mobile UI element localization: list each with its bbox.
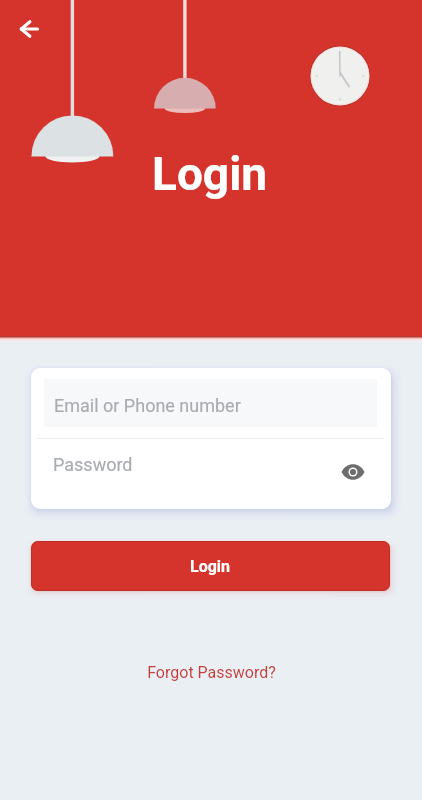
staticText: Login	[190, 557, 231, 576]
button[interactable]: Password	[31, 437, 391, 492]
staticText: Login	[152, 147, 268, 201]
button[interactable]: Email or Phone number	[44, 379, 377, 427]
staticText: Forgot Password?	[147, 663, 276, 682]
button[interactable]: Forgot Password?	[131, 655, 292, 690]
button[interactable]: Login	[31, 541, 390, 591]
staticText: Email or Phone number	[54, 395, 241, 416]
staticText: Password	[53, 454, 133, 475]
button[interactable]: Show password	[333, 452, 373, 492]
button[interactable]: Back	[12, 13, 44, 45]
